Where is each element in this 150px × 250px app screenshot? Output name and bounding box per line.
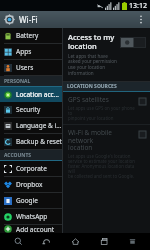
staticText: Let apps that have asked your permission… (68, 53, 117, 77)
staticText: ACCOUNTS (4, 152, 32, 159)
staticText: Wi-Fi (19, 14, 38, 25)
button[interactable]: Search (7, 233, 29, 250)
button[interactable]: More options (136, 11, 146, 28)
staticText: Add account (16, 225, 55, 233)
button[interactable]: Settings icon (4, 14, 15, 25)
button[interactable]: Access to my location (63, 28, 150, 81)
staticText: Wi-Fi & mobile network location (68, 128, 136, 152)
button[interactable]: Checkbox (139, 131, 146, 138)
staticText: Let apps use Google's location service t… (68, 153, 136, 179)
button[interactable]: Language & in... (0, 118, 62, 133)
button[interactable]: Location master switch (120, 37, 146, 48)
staticText: Dropbox (16, 180, 43, 189)
button[interactable]: Dropbox (0, 177, 62, 192)
staticText: Corporate (16, 164, 47, 173)
staticText: WhatsApp (16, 212, 48, 221)
staticText: Google (16, 196, 38, 205)
staticText: Language & in... (16, 121, 62, 130)
button[interactable]: Screenshot (121, 233, 143, 250)
button[interactable]: Google (0, 193, 62, 208)
staticText: Battery (16, 31, 39, 40)
button[interactable]: Wi-Fi & mobile network location (63, 125, 150, 182)
staticText: 13:12 (129, 1, 147, 11)
button[interactable]: Users (0, 60, 62, 75)
button[interactable]: Add account (0, 225, 62, 233)
button[interactable]: Location acce... (0, 87, 62, 102)
staticText: PERSONAL (4, 78, 31, 85)
staticText: Security (16, 105, 41, 114)
button[interactable]: GPS satellites (63, 92, 150, 124)
staticText: LOCATION SOURCES (67, 83, 117, 90)
button[interactable]: Corporate (0, 161, 62, 176)
button[interactable]: Checkbox (139, 98, 146, 105)
staticText: Access to my location (68, 32, 115, 51)
button[interactable]: Home (64, 233, 86, 250)
staticText: Location acce... (16, 90, 62, 99)
staticText: Let apps use GPS on your phone to pinpoi… (68, 105, 136, 121)
button[interactable]: Battery (0, 28, 62, 43)
button[interactable]: Back (35, 233, 57, 250)
staticText: Users (16, 63, 34, 72)
staticText: GPS satellites (68, 95, 109, 104)
staticText: Backup & reset (16, 137, 62, 146)
staticText: Apps (16, 47, 32, 56)
button[interactable]: Recent apps (93, 233, 115, 250)
button[interactable]: Backup & reset (0, 134, 62, 149)
button[interactable]: Security (0, 102, 62, 117)
button[interactable]: Apps (0, 44, 62, 59)
button[interactable]: WhatsApp (0, 209, 62, 224)
